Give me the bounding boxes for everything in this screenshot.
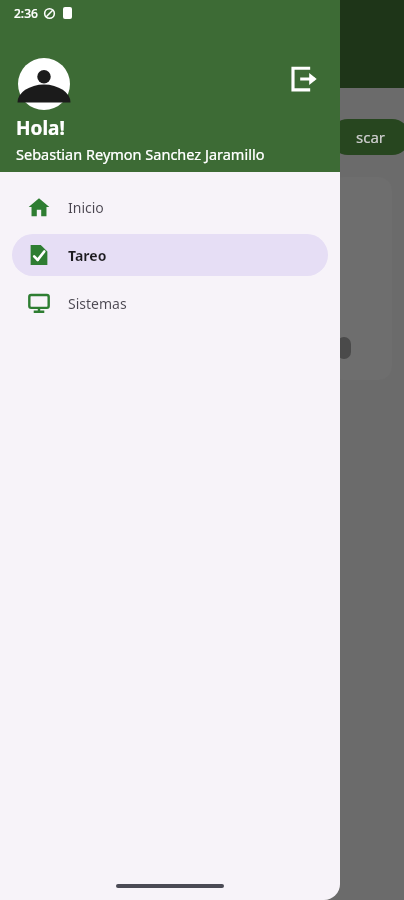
staticText: Tareo <box>68 246 107 265</box>
staticText: Hola! <box>16 115 65 141</box>
staticText: 2:36 <box>14 5 38 21</box>
button[interactable]: Tareo <box>12 234 328 276</box>
staticText: Sebastian Reymon Sanchez Jaramillo <box>16 144 265 164</box>
staticText: scar <box>356 127 385 147</box>
staticText: Sistemas <box>68 294 127 313</box>
button[interactable]: Sistemas <box>12 282 328 324</box>
button[interactable]: Cerrar sesión <box>282 59 322 99</box>
button[interactable]: Inicio <box>12 186 328 228</box>
button[interactable]: scar <box>330 119 404 155</box>
staticText: Inicio <box>68 198 104 217</box>
